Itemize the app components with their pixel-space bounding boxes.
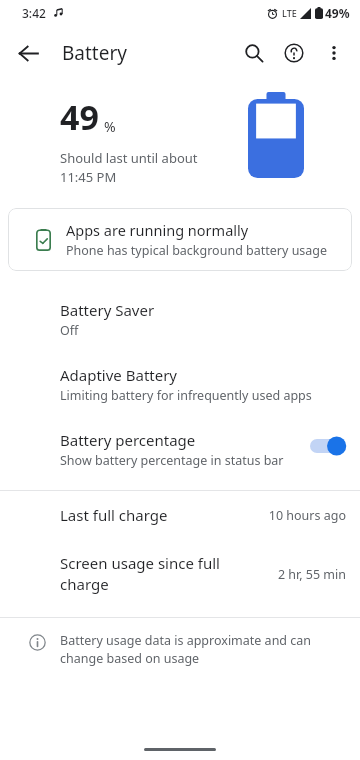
button[interactable]: Search xyxy=(234,33,274,73)
staticText: Should last until about 11:45 PM xyxy=(60,149,198,186)
staticText: Battery percentage xyxy=(60,430,196,450)
staticText: 10 hours ago xyxy=(268,507,346,524)
staticText: LTE xyxy=(282,7,297,19)
staticText: Screen usage since full charge xyxy=(60,553,265,595)
staticText: Limiting battery for infrequently used a… xyxy=(60,387,312,404)
staticText: 3:42 xyxy=(22,5,46,21)
staticText: % xyxy=(104,117,116,136)
staticText: Show battery percentage in status bar xyxy=(60,452,284,469)
staticText: Battery xyxy=(62,40,127,66)
button[interactable]: Back xyxy=(8,33,48,73)
button[interactable]: Last full charge xyxy=(0,491,360,539)
button[interactable]: Help xyxy=(274,33,314,73)
staticText: Battery usage data is approximate and ca… xyxy=(60,632,336,667)
staticText: Phone has typical background battery usa… xyxy=(66,242,328,259)
staticText: Apps are running normally xyxy=(66,220,249,240)
staticText: 49 xyxy=(60,94,99,140)
button[interactable]: Battery percentage xyxy=(0,417,360,482)
button[interactable]: More options xyxy=(314,33,354,73)
staticText: Last full charge xyxy=(60,505,256,525)
staticText: 49% xyxy=(325,5,350,21)
button[interactable]: Adaptive Battery xyxy=(0,352,360,417)
staticText: Adaptive Battery xyxy=(60,365,178,385)
staticText: Battery Saver xyxy=(60,300,155,320)
staticText: 2 hr, 55 min xyxy=(277,566,346,583)
button[interactable]: Screen usage since full charge xyxy=(0,539,360,609)
button[interactable]: Apps are running normally xyxy=(8,208,352,271)
staticText: Off xyxy=(60,322,79,339)
button[interactable]: Battery Saver xyxy=(0,287,360,352)
